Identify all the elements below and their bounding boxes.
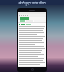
- button[interactable]: Home button: [31, 68, 34, 71]
- button[interactable]: [18, 14, 46, 17]
- button[interactable]: सोच्नै छुट्न जान्छ जीवन: [0, 0, 64, 5]
- staticText: सोच्नै छुट्न जान्छ जीवन: [18, 1, 46, 5]
- button[interactable]: Phone mockup showing document app: [17, 8, 47, 72]
